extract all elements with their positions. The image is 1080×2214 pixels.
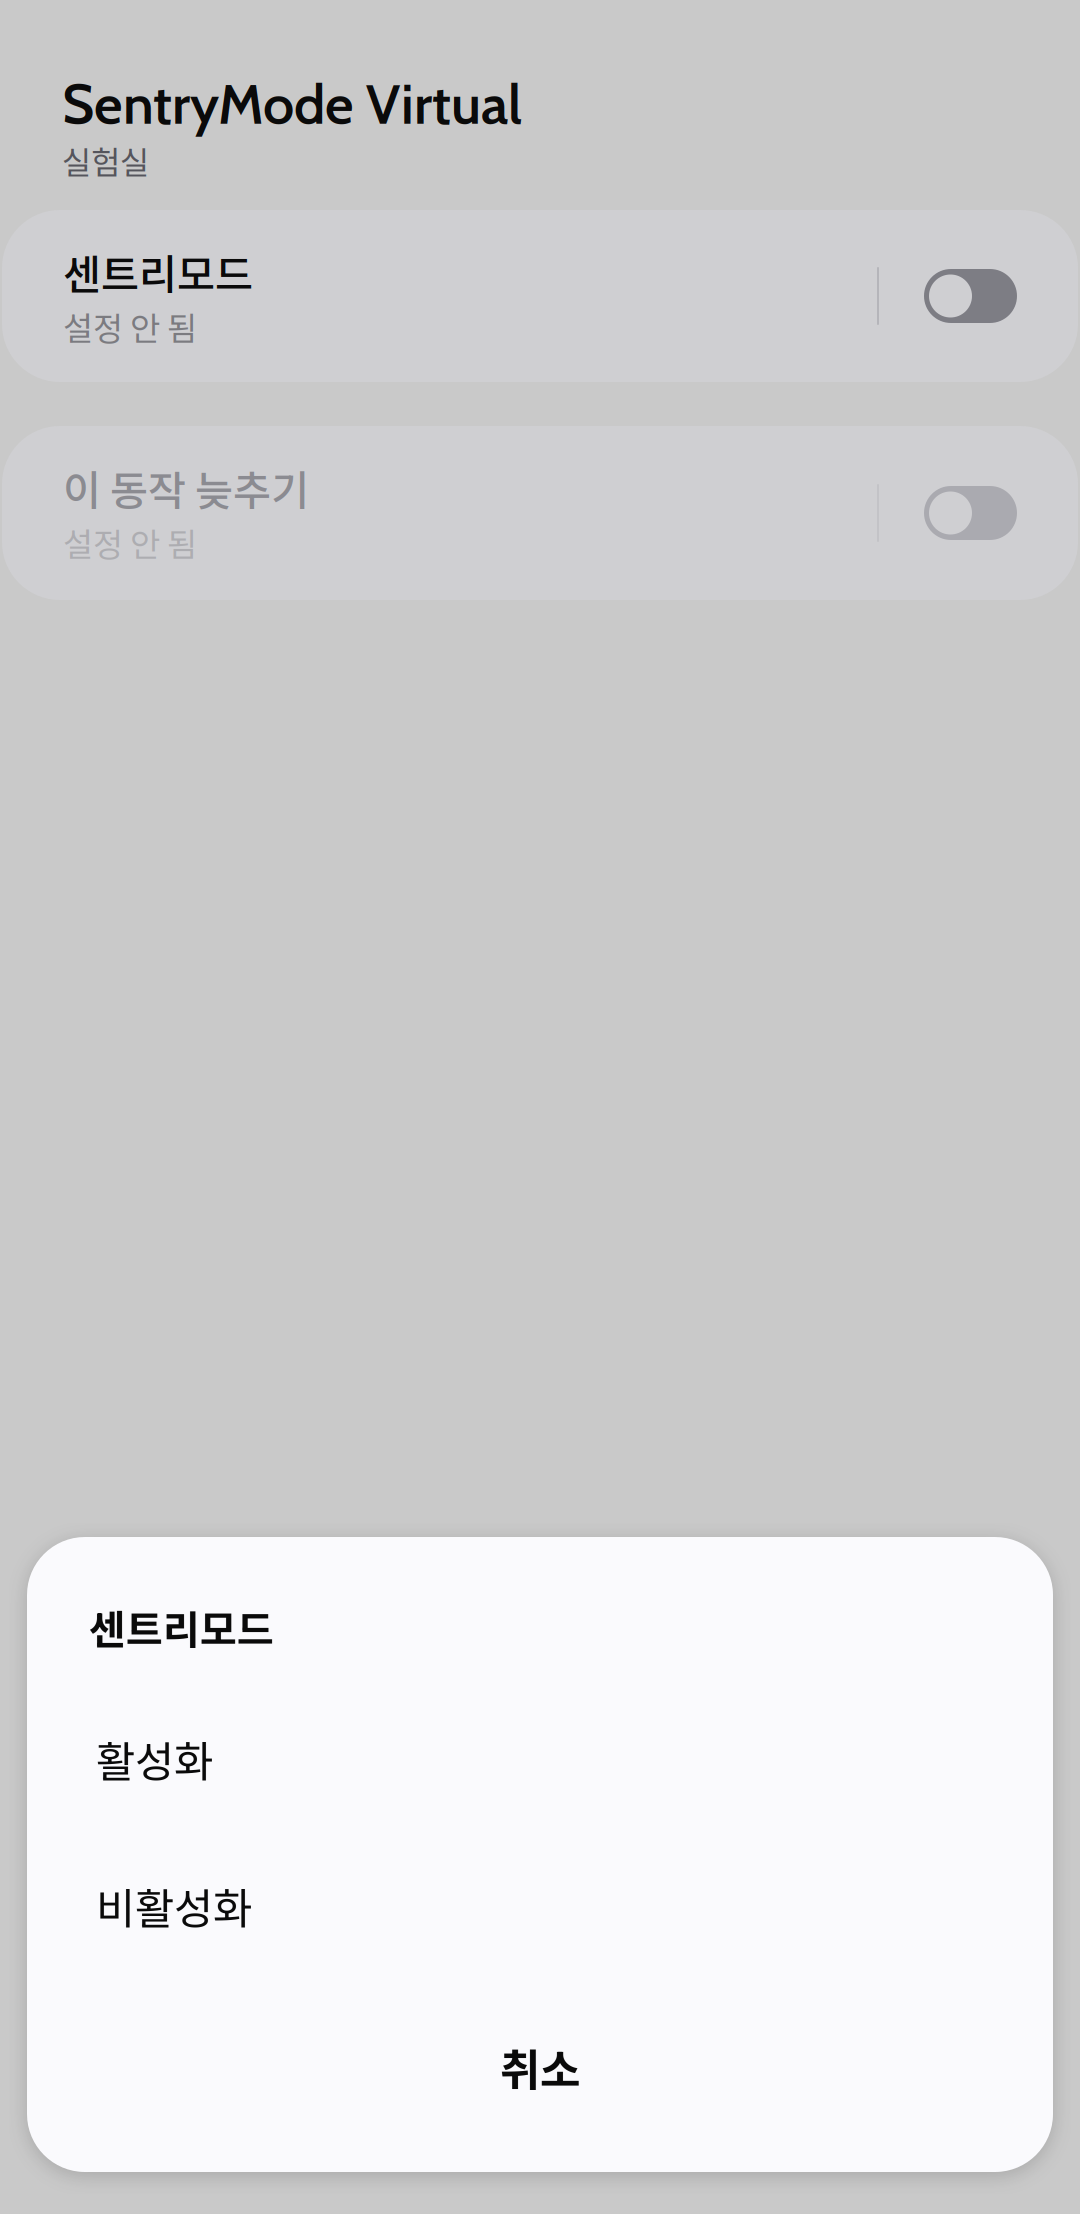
- staticText: 센트리모드: [89, 1598, 274, 1656]
- staticText: SentryMode Virtual: [62, 70, 522, 138]
- staticText: 센트리모드: [63, 242, 253, 302]
- staticText: 설정 안 됨: [63, 303, 197, 350]
- staticText: 이 동작 늦추기: [63, 458, 309, 518]
- button[interactable]: 비활성화: [27, 1858, 1053, 1954]
- staticText: 활성화: [96, 1728, 213, 1790]
- button[interactable]: 활성화: [27, 1711, 1053, 1807]
- staticText: 실험실: [62, 137, 149, 184]
- staticText: 설정 안 됨: [63, 519, 197, 566]
- staticText: 비활성화: [96, 1875, 252, 1937]
- staticText: 취소: [500, 2035, 580, 2099]
- button[interactable]: 이 동작 늦추기: [2, 426, 1078, 600]
- button[interactable]: 취소: [27, 2023, 1053, 2111]
- button[interactable]: 센트리모드: [2, 210, 1078, 382]
